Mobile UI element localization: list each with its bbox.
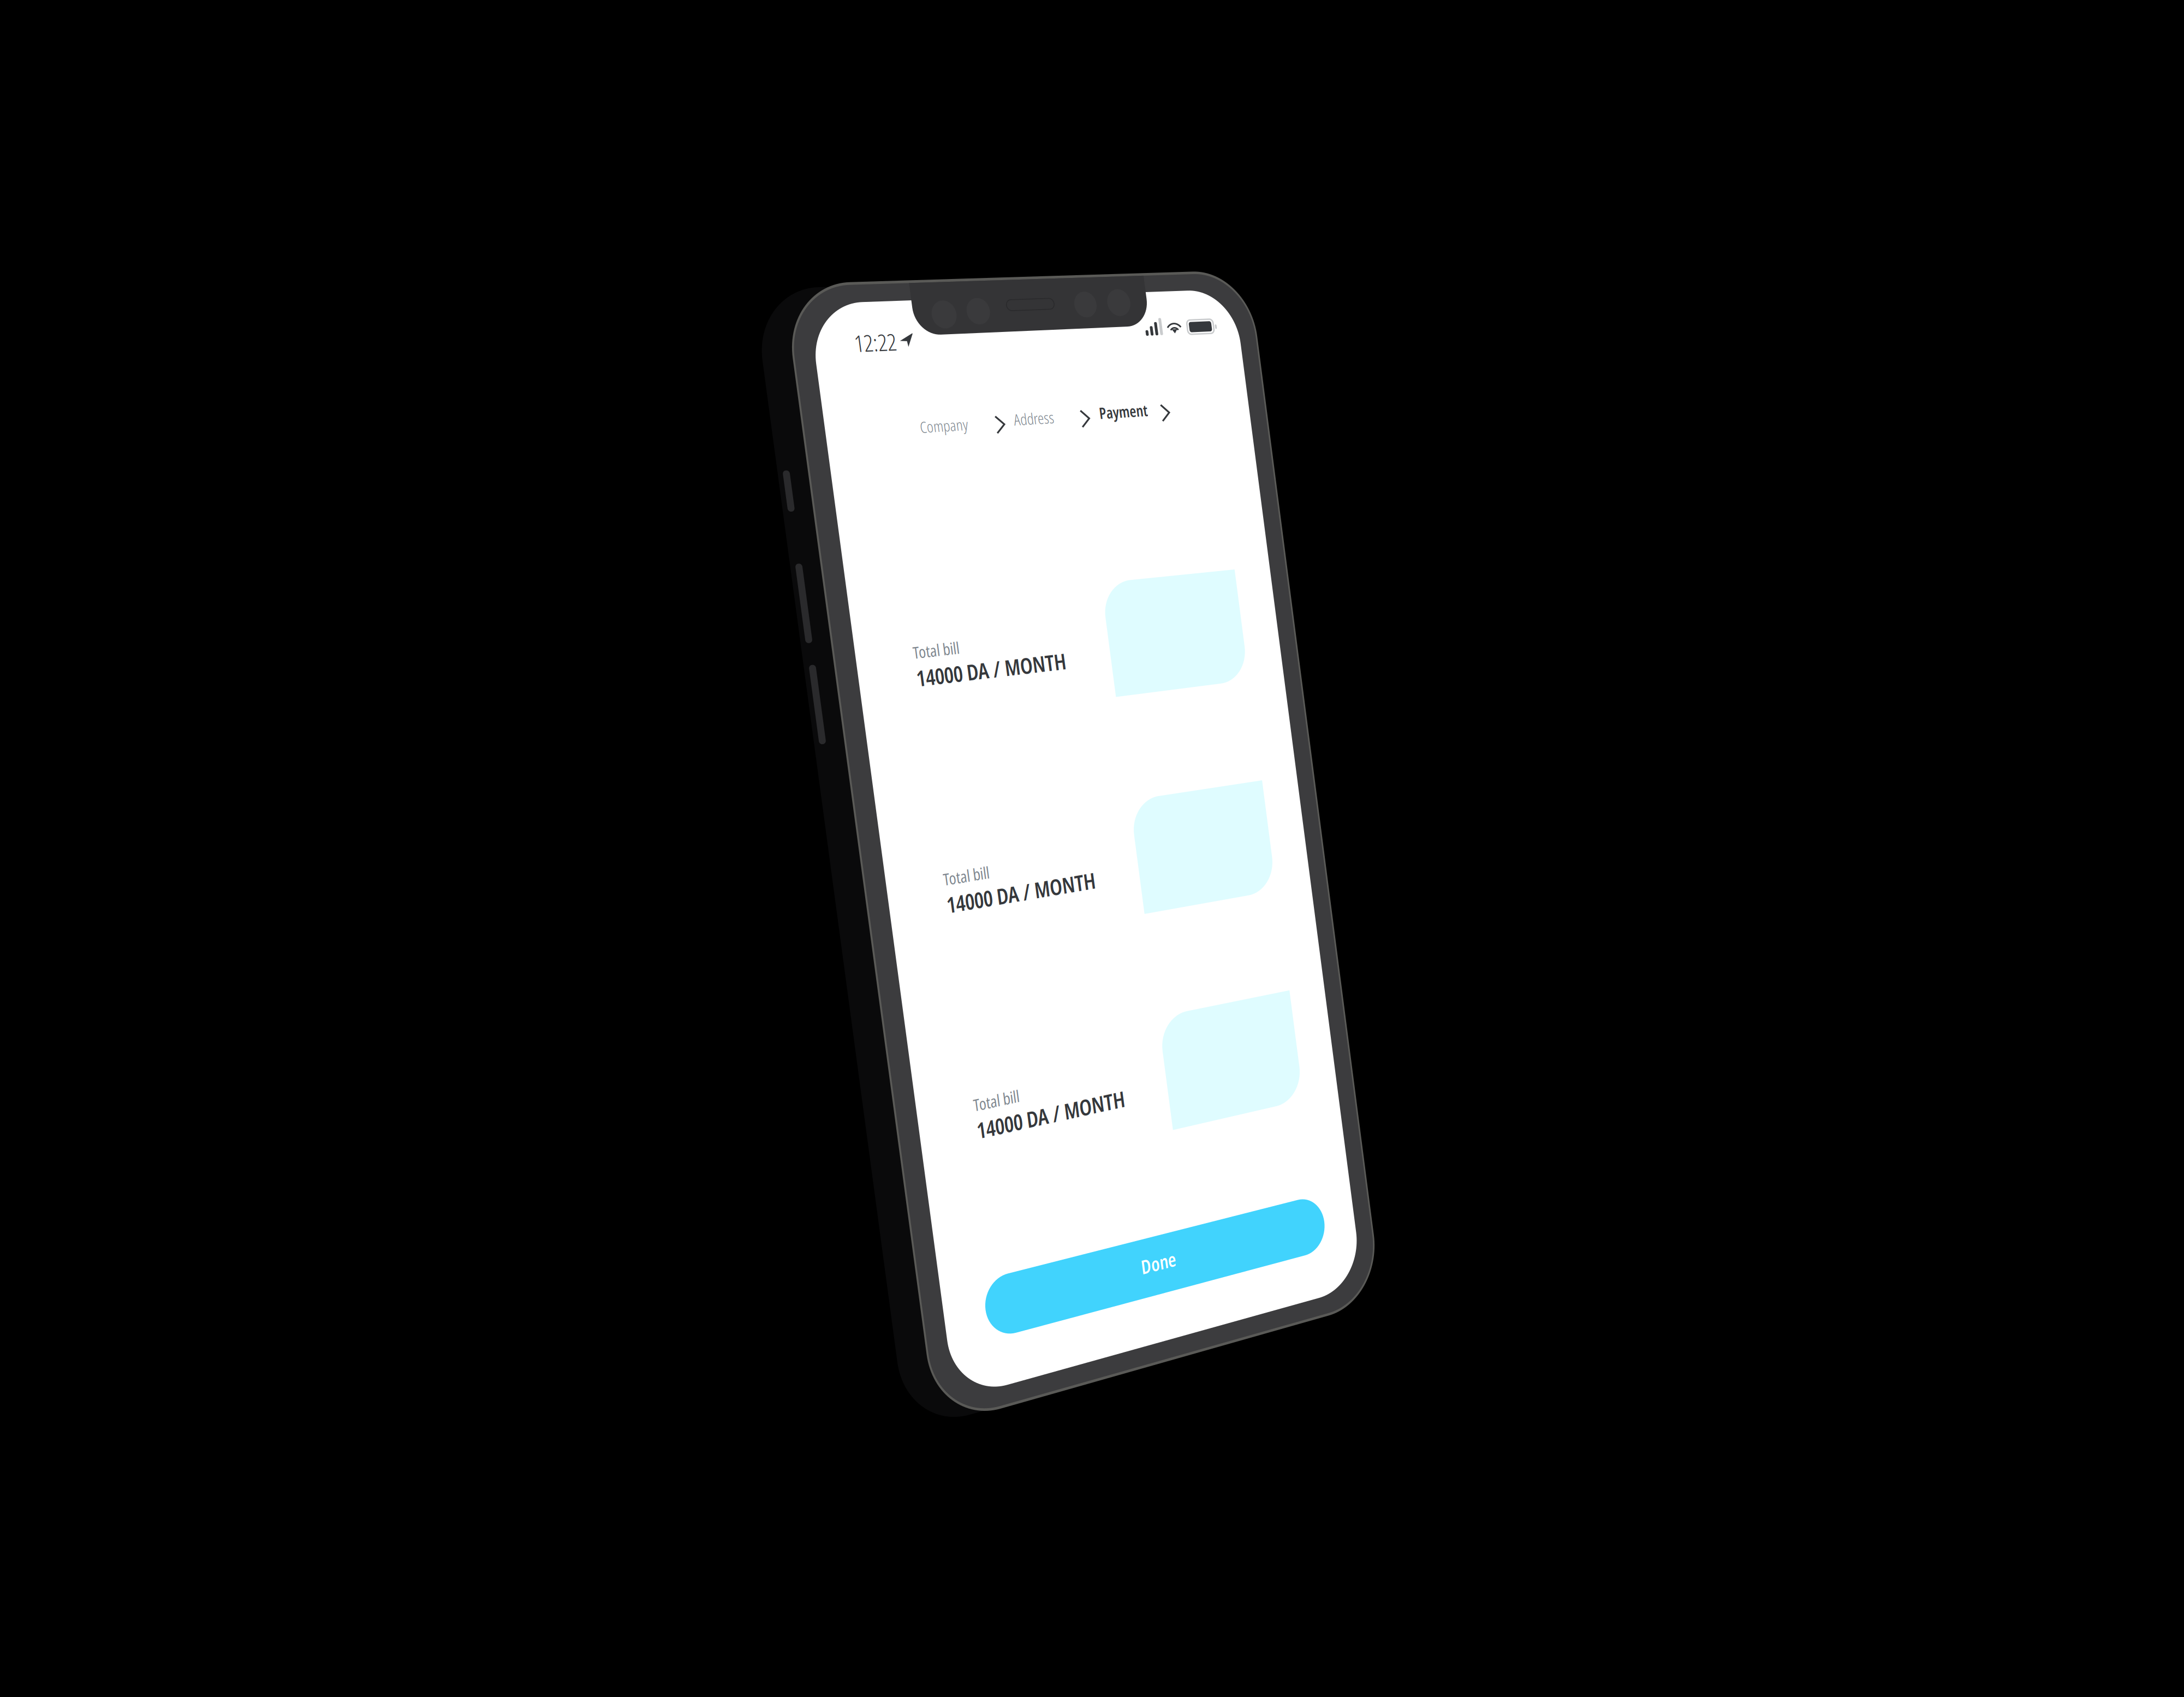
staticText: Company [918, 416, 968, 436]
staticText: Address [1011, 409, 1054, 428]
staticText: Total bill [911, 641, 960, 662]
staticText: 14000 DA / MONTH [974, 1116, 1134, 1144]
staticText: 14000 DA / MONTH [944, 890, 1104, 918]
button[interactable]: Address [0, 0, 2184, 1697]
staticText: Total bill [941, 868, 990, 889]
staticText: 14000 DA / MONTH [914, 663, 1073, 692]
button[interactable]: Payment [0, 0, 2184, 1697]
button[interactable]: Total bill [0, 0, 2184, 1697]
staticText: Done [1139, 1254, 1177, 1278]
button[interactable]: Total bill [0, 0, 2184, 1697]
button[interactable]: Company [0, 0, 2184, 1697]
staticText: 12:22 [852, 328, 896, 357]
staticText: Payment [1097, 402, 1149, 422]
staticText: Total bill [971, 1094, 1020, 1115]
button[interactable]: Done [0, 0, 2184, 1697]
button[interactable]: Total bill [0, 0, 2184, 1697]
